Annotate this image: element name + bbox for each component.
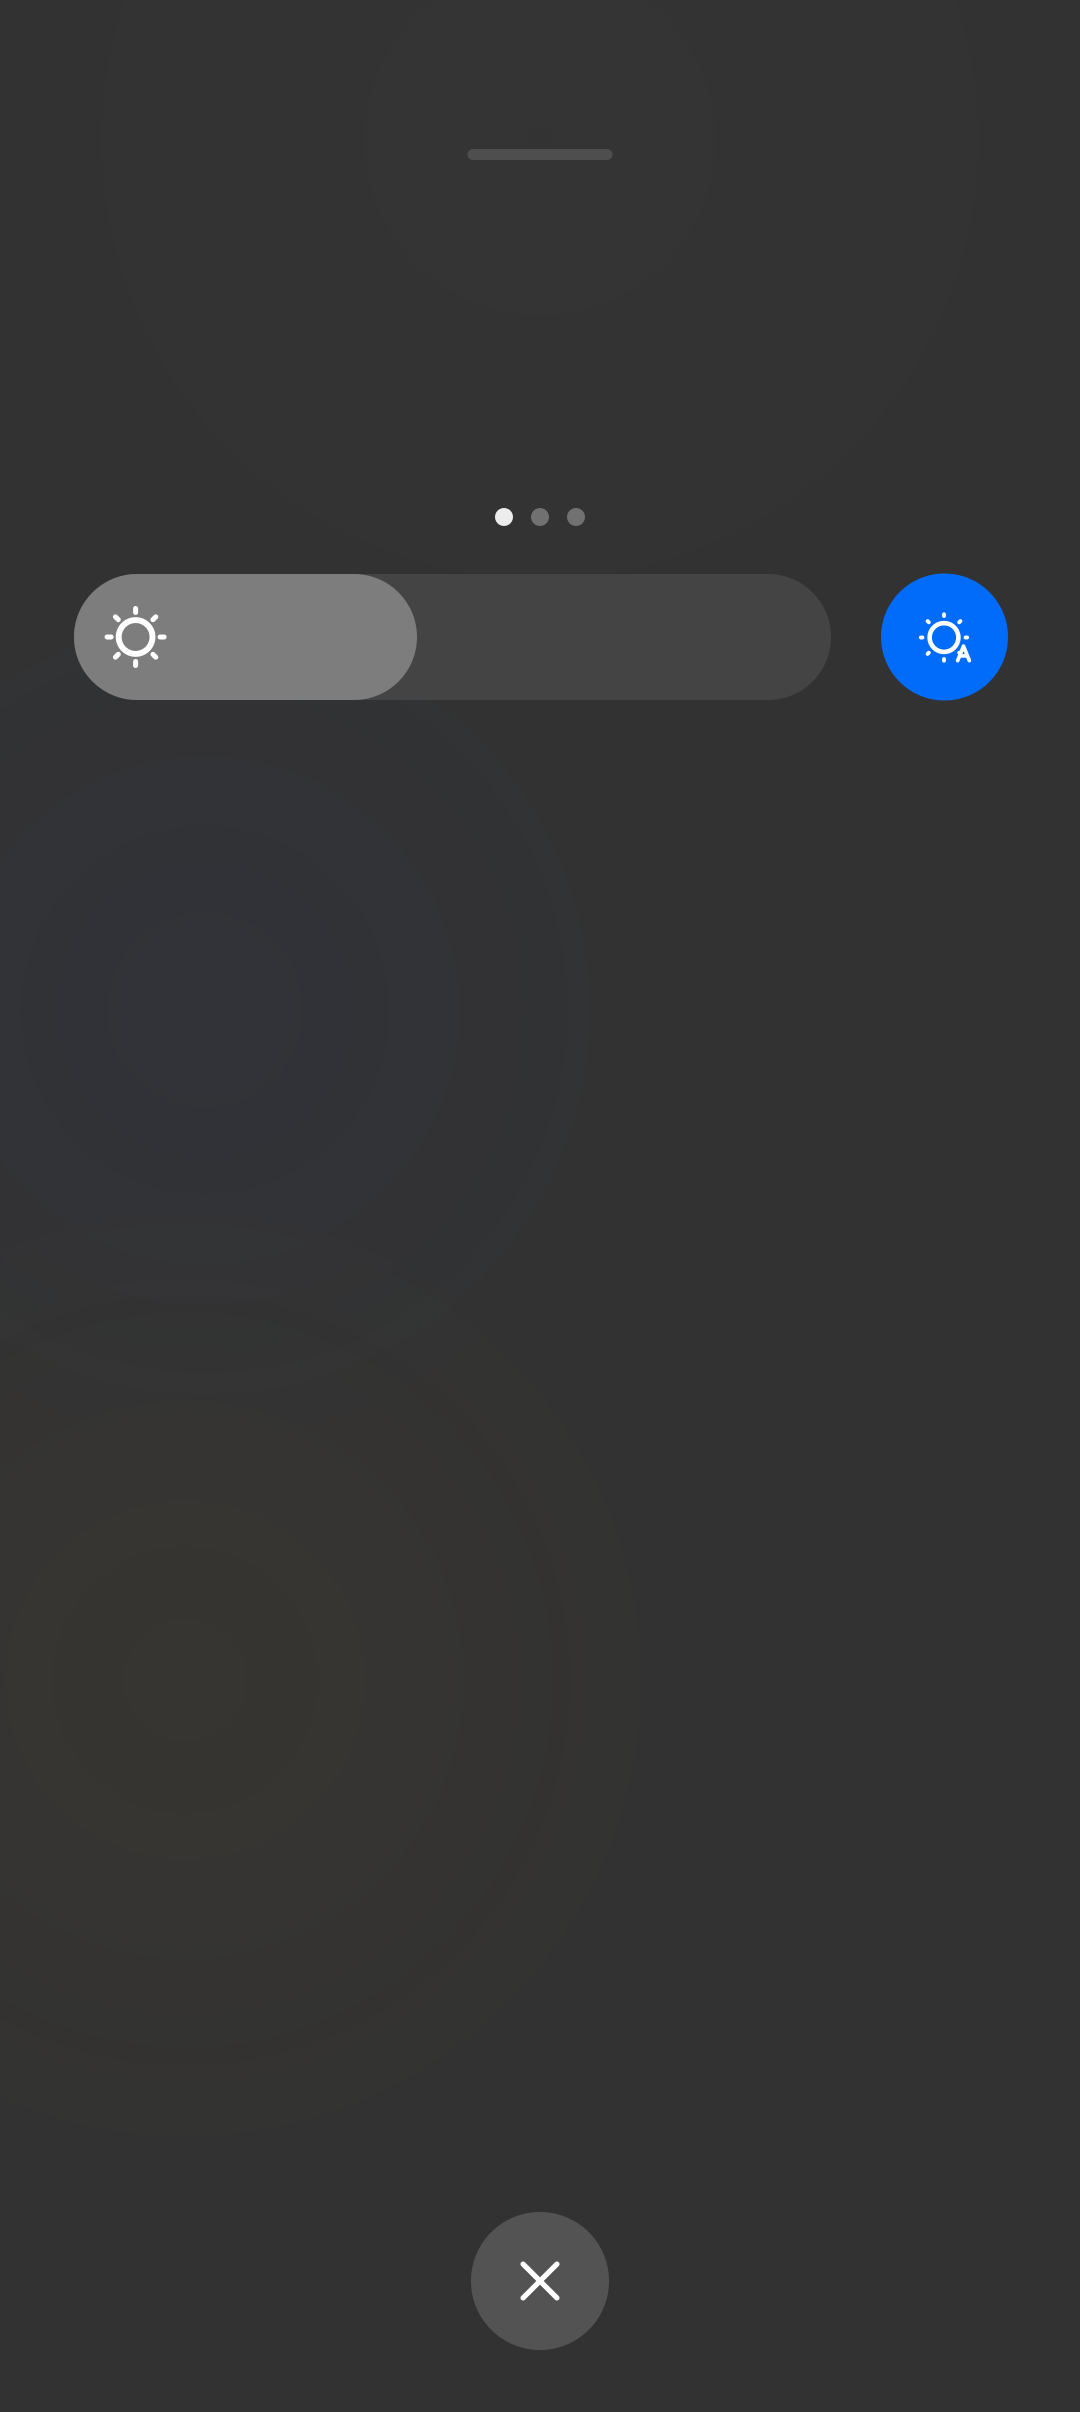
button[interactable]: Auto brightness	[881, 573, 1008, 700]
button[interactable]: Brightness	[74, 574, 831, 700]
button[interactable]: Close	[471, 2212, 609, 2350]
